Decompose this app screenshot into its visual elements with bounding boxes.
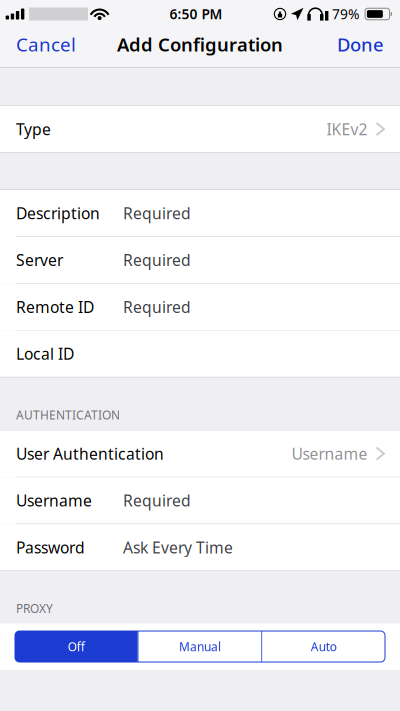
staticText: Required xyxy=(123,296,191,317)
staticText: Off xyxy=(68,638,85,655)
staticText: Username xyxy=(16,490,92,511)
button[interactable]: Cancel xyxy=(14,25,78,63)
staticText: Required xyxy=(123,249,191,271)
staticText: Ask Every Time xyxy=(123,537,233,558)
staticText: AUTHENTICATION xyxy=(16,407,120,423)
staticText: 6:50 PM xyxy=(169,5,222,23)
button[interactable]: Password xyxy=(0,524,400,571)
button[interactable]: Off xyxy=(15,631,138,662)
button[interactable]: Description xyxy=(0,190,400,236)
staticText: Remote ID xyxy=(16,296,94,317)
staticText: Required xyxy=(123,202,191,224)
staticText: PROXY xyxy=(16,600,53,616)
staticText: Add Configuration xyxy=(117,32,283,57)
staticText: Auto xyxy=(311,638,337,655)
staticText: Type xyxy=(16,118,51,140)
button[interactable]: Server xyxy=(0,237,400,283)
staticText: Server xyxy=(16,249,63,271)
button[interactable]: Manual xyxy=(139,631,261,662)
button[interactable]: Local ID xyxy=(0,330,400,377)
button[interactable]: Done xyxy=(335,26,386,63)
staticText: 79% xyxy=(332,5,359,23)
button[interactable]: User Authentication xyxy=(0,430,400,477)
staticText: User Authentication xyxy=(16,443,164,464)
button[interactable]: Auto xyxy=(262,631,385,662)
button[interactable]: Remote ID xyxy=(0,284,400,330)
button[interactable]: Type xyxy=(0,106,400,152)
staticText: IKEv2 xyxy=(326,118,367,140)
staticText: Password xyxy=(16,537,85,558)
button[interactable]: Username xyxy=(0,477,400,524)
staticText: Done xyxy=(337,32,384,57)
staticText: Description xyxy=(16,202,100,224)
staticText: Local ID xyxy=(16,343,74,364)
staticText: Manual xyxy=(179,638,221,655)
staticText: Cancel xyxy=(16,31,76,57)
staticText: Username xyxy=(291,443,367,464)
staticText: Required xyxy=(123,490,191,511)
